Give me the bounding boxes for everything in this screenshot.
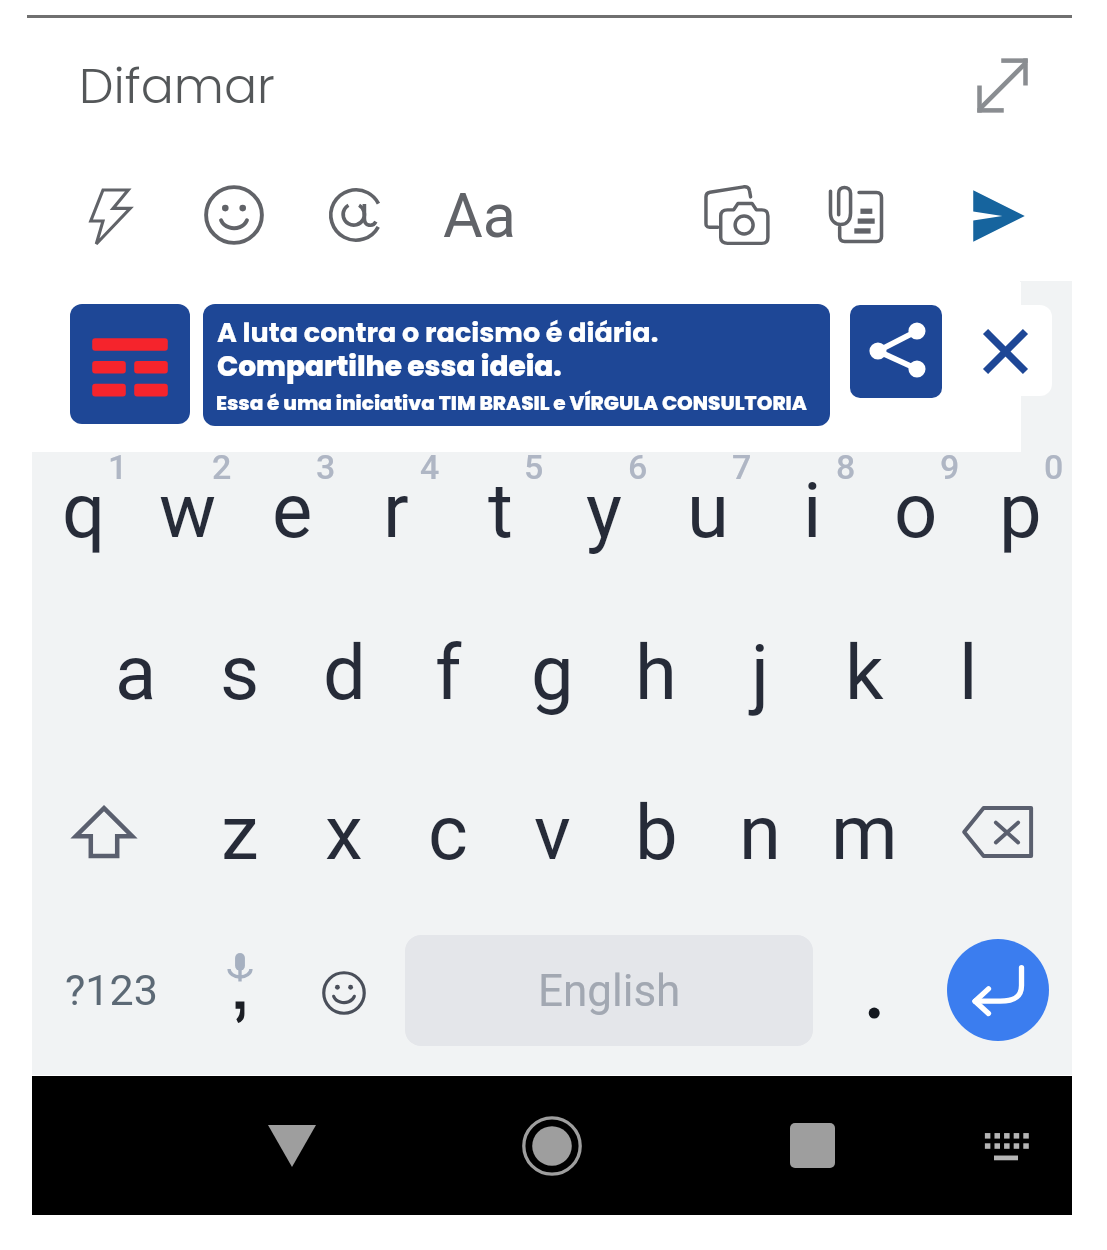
button[interactable]: z bbox=[188, 753, 292, 911]
button[interactable]: h bbox=[604, 593, 708, 751]
button[interactable]: i bbox=[760, 431, 864, 589]
staticText: i bbox=[803, 466, 822, 555]
button[interactable]: Enter bbox=[947, 939, 1049, 1041]
staticText: q bbox=[62, 466, 106, 555]
staticText: b bbox=[635, 788, 678, 877]
button[interactable]: Expand bbox=[971, 54, 1034, 117]
staticText: 3 bbox=[316, 447, 336, 487]
staticText: A luta contra o racismo é diária. bbox=[217, 314, 659, 352]
button[interactable]: English bbox=[405, 935, 813, 1046]
button[interactable]: Close bbox=[982, 328, 1029, 375]
button[interactable]: Send bbox=[971, 188, 1027, 244]
button[interactable]: f bbox=[396, 593, 500, 751]
button[interactable]: e bbox=[240, 431, 344, 589]
button[interactable]: b bbox=[604, 753, 708, 911]
button[interactable]: Shift bbox=[52, 753, 156, 911]
button[interactable]: Recents bbox=[752, 1076, 872, 1215]
button[interactable]: Backspace bbox=[946, 753, 1050, 911]
button[interactable]: Emoji keyboard bbox=[292, 919, 396, 1067]
staticText: u bbox=[687, 466, 729, 555]
button[interactable]: r bbox=[344, 431, 448, 589]
staticText: v bbox=[534, 788, 571, 877]
button[interactable]: Attach bbox=[822, 182, 890, 250]
button[interactable]: Home bbox=[492, 1076, 612, 1215]
button[interactable]: j bbox=[708, 593, 812, 751]
staticText: n bbox=[739, 788, 781, 877]
staticText: Difamar bbox=[79, 52, 275, 116]
staticText: o bbox=[894, 466, 938, 555]
staticText: s bbox=[220, 628, 260, 717]
staticText: x bbox=[325, 788, 363, 877]
button[interactable]: A luta contra o racismo é diária. bbox=[203, 304, 830, 426]
button[interactable]: n bbox=[708, 753, 812, 911]
button[interactable]: Quick reply bbox=[88, 183, 138, 249]
staticText: r bbox=[383, 466, 409, 555]
staticText: Aa bbox=[443, 180, 516, 250]
button[interactable]: ?123 bbox=[36, 916, 186, 1064]
button[interactable]: a bbox=[84, 593, 188, 751]
staticText: l bbox=[959, 628, 978, 717]
staticText: 9 bbox=[940, 447, 960, 487]
staticText: a bbox=[115, 628, 157, 717]
staticText: 2 bbox=[212, 447, 232, 487]
button[interactable]: q bbox=[32, 431, 136, 589]
button[interactable]: c bbox=[396, 753, 500, 911]
button[interactable]: Camera bbox=[702, 180, 774, 252]
button[interactable]: y bbox=[552, 431, 656, 589]
staticText: k bbox=[845, 628, 884, 717]
button[interactable]: m bbox=[812, 753, 916, 911]
staticText: 7 bbox=[732, 447, 752, 487]
button[interactable]: l bbox=[916, 593, 1020, 751]
button[interactable]: d bbox=[292, 593, 396, 751]
staticText: j bbox=[751, 628, 770, 717]
staticText: 0 bbox=[1044, 447, 1064, 487]
staticText: 1 bbox=[108, 447, 128, 487]
button[interactable]: t bbox=[448, 431, 552, 589]
staticText: d bbox=[323, 628, 366, 717]
button[interactable]: u bbox=[656, 431, 760, 589]
button[interactable]: v bbox=[500, 753, 604, 911]
staticText: h bbox=[635, 628, 677, 717]
button[interactable]: x bbox=[292, 753, 396, 911]
staticText: English bbox=[538, 965, 681, 1017]
button[interactable]: Back bbox=[232, 1076, 352, 1215]
button[interactable]: s bbox=[188, 593, 292, 751]
staticText: t bbox=[488, 466, 513, 555]
staticText: p bbox=[999, 466, 1042, 555]
button[interactable]: w bbox=[136, 431, 240, 589]
button[interactable]: Mention bbox=[328, 187, 384, 243]
staticText: Essa é uma iniciativa TIM BRASIL e VÍRGU… bbox=[216, 389, 807, 417]
button[interactable]: Emoji bbox=[204, 185, 264, 245]
staticText: m bbox=[831, 788, 898, 877]
staticText: w bbox=[159, 466, 217, 555]
staticText: y bbox=[586, 466, 622, 555]
staticText: c bbox=[428, 788, 468, 877]
staticText: e bbox=[272, 466, 313, 555]
button[interactable]: Comma bbox=[188, 916, 292, 1064]
button[interactable]: k bbox=[812, 593, 916, 751]
staticText: g bbox=[531, 628, 574, 717]
button[interactable] bbox=[821, 916, 925, 1064]
staticText: 4 bbox=[420, 447, 440, 487]
button[interactable]: g bbox=[500, 593, 604, 751]
button[interactable]: Switch keyboard bbox=[946, 1076, 1066, 1215]
staticText: ?123 bbox=[65, 965, 158, 1015]
button[interactable]: o bbox=[864, 431, 968, 589]
staticText: 8 bbox=[836, 447, 856, 487]
button[interactable]: Aa bbox=[438, 180, 520, 250]
staticText: f bbox=[435, 628, 462, 717]
button[interactable]: p bbox=[968, 431, 1072, 589]
staticText: 5 bbox=[524, 447, 544, 487]
staticText: z bbox=[221, 788, 259, 877]
staticText: 6 bbox=[628, 447, 648, 487]
staticText: Compartilhe essa ideia. bbox=[217, 347, 562, 386]
button[interactable]: Share bbox=[850, 305, 942, 398]
